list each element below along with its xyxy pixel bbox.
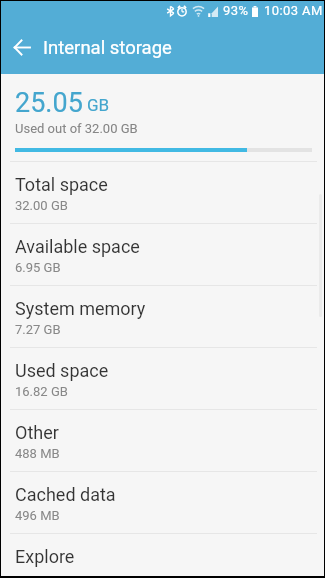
staticText: 32.00 GB: [15, 198, 68, 213]
button[interactable]: Used space: [1, 348, 324, 410]
button[interactable]: Cached data: [1, 472, 324, 534]
button[interactable]: Navigate back: [0, 25, 44, 69]
staticText: Total space: [15, 174, 108, 195]
button[interactable]: Explore: [1, 534, 324, 578]
staticText: Explore: [15, 546, 75, 567]
staticText: Used out of 32.00 GB: [15, 121, 138, 136]
button[interactable]: Available space: [1, 224, 324, 286]
staticText: Other: [15, 422, 59, 443]
staticText: Available space: [15, 236, 140, 257]
button[interactable]: Other: [1, 410, 324, 472]
button[interactable]: Total space: [1, 162, 324, 224]
staticText: 10:03 AM: [264, 3, 323, 18]
staticText: 7.27 GB: [15, 322, 61, 337]
staticText: 488 MB: [15, 446, 60, 461]
staticText: Internal storage: [43, 37, 172, 59]
staticText: 25.05: [15, 87, 83, 119]
staticText: Cached data: [15, 484, 116, 505]
button[interactable]: System memory: [1, 286, 324, 348]
staticText: System memory: [15, 298, 146, 319]
staticText: 16.82 GB: [15, 384, 68, 399]
staticText: Used space: [15, 360, 109, 381]
staticText: 93%: [223, 3, 249, 18]
staticText: 496 MB: [15, 508, 60, 523]
staticText: 6.95 GB: [15, 260, 61, 275]
staticText: GB: [87, 95, 110, 115]
